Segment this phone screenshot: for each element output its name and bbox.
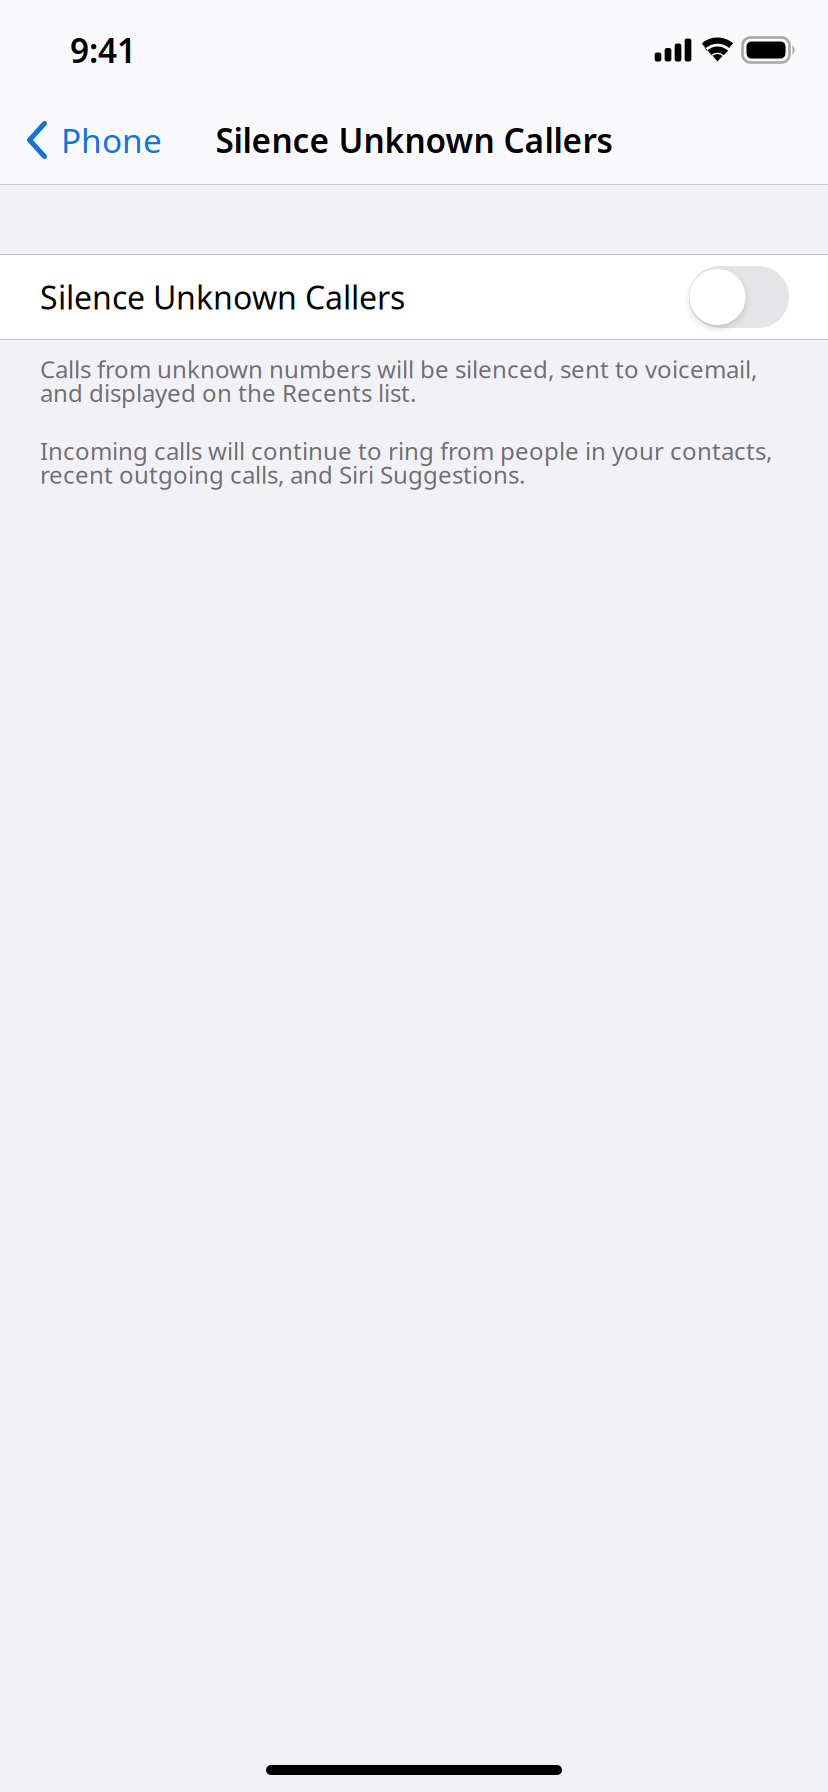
staticText: Silence Unknown Callers	[215, 118, 612, 162]
staticText: Incoming calls will continue to ring fro…	[40, 435, 772, 490]
button[interactable]: Back to Phone	[0, 106, 176, 174]
staticText: Silence Unknown Callers	[40, 276, 405, 318]
button[interactable]: Silence Unknown Callers	[0, 254, 828, 340]
staticText: 9:41	[70, 28, 136, 72]
staticText: Calls from unknown numbers will be silen…	[40, 353, 757, 409]
staticText: Phone	[61, 118, 162, 162]
